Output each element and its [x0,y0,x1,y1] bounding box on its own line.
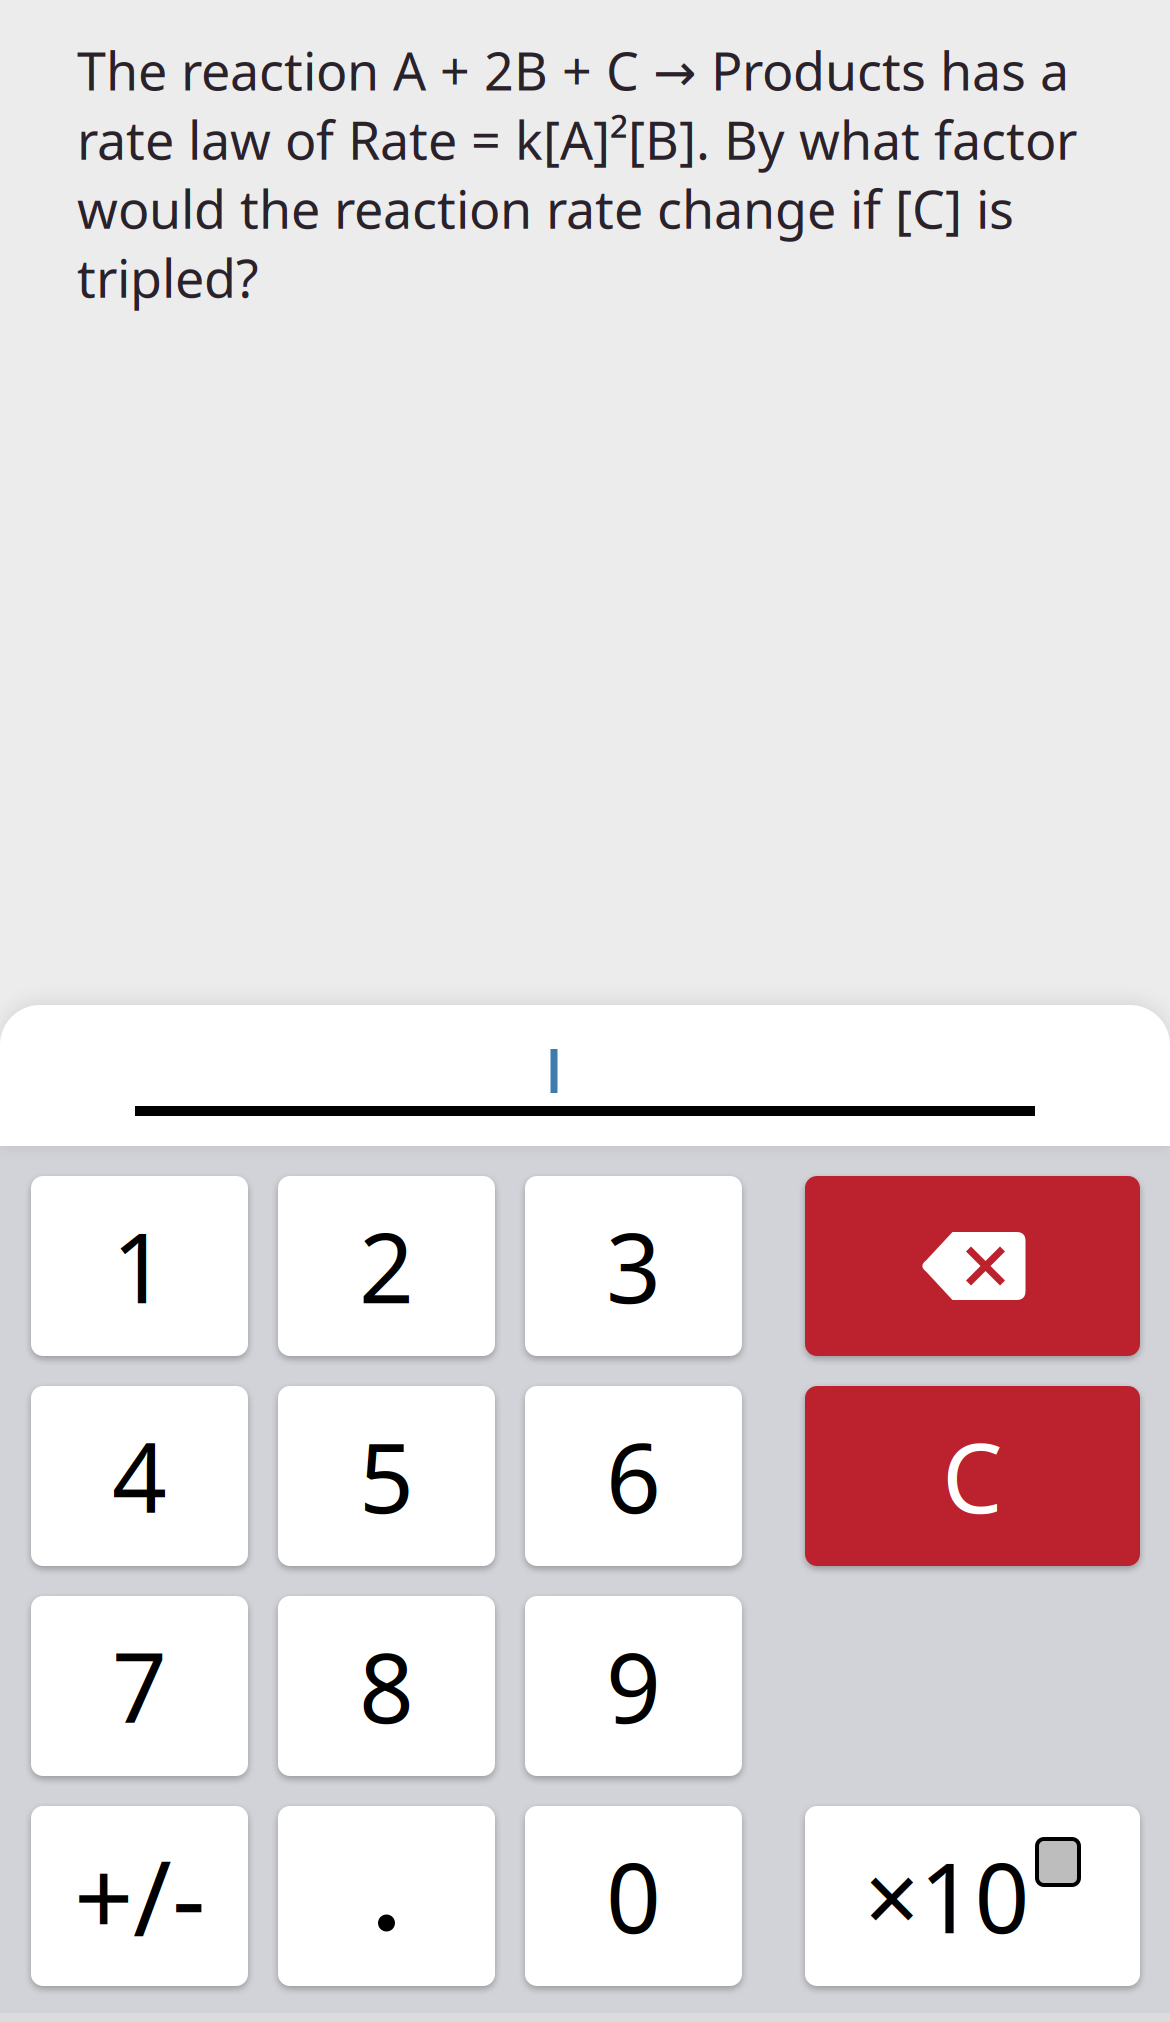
staticText: 4 [112,1412,167,1540]
staticText: ×10 [864,1832,1029,1960]
button[interactable]: 0 [525,1806,742,1986]
button[interactable]: 1 [31,1176,248,1356]
button[interactable]: 4 [31,1386,248,1566]
button[interactable]: 2 [278,1176,495,1356]
staticText: +/- [74,1827,205,1965]
button[interactable]: 8 [278,1596,495,1776]
button[interactable]: C [805,1386,1140,1566]
staticText: 5 [359,1412,414,1540]
staticText: 0 [606,1832,661,1960]
button[interactable]: Delete [805,1176,1140,1356]
staticText: 2 [359,1202,414,1330]
button[interactable]: Answer [135,1035,1035,1135]
staticText: 7 [112,1622,167,1750]
button[interactable]: 5 [278,1386,495,1566]
staticText: 9 [606,1622,661,1750]
button[interactable]: 6 [525,1386,742,1566]
button[interactable]: Times ten to the power of [805,1806,1140,1986]
staticText: 8 [359,1622,414,1750]
staticText: C [942,1412,1003,1540]
staticText: The reaction A + 2B + C → Products has a… [77,36,1077,312]
staticText: 6 [606,1412,661,1540]
staticText: 1 [112,1202,167,1330]
staticText: 3 [606,1202,661,1330]
button[interactable]: 7 [31,1596,248,1776]
button[interactable]: 9 [525,1596,742,1776]
button[interactable]: +/- [31,1806,248,1986]
button[interactable]: 3 [525,1176,742,1356]
button[interactable]: Decimal point [278,1806,495,1986]
